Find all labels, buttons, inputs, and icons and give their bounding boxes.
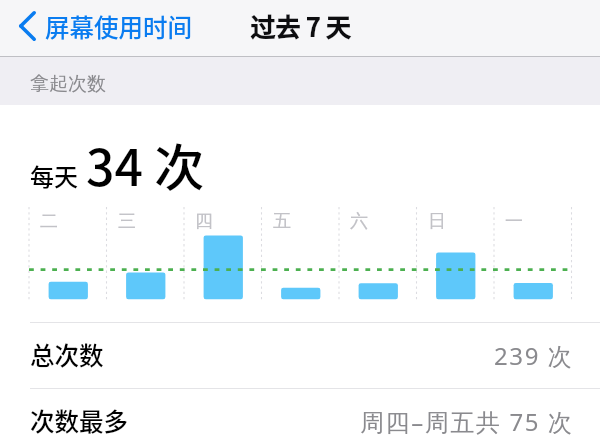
staticText: 每天: [30, 158, 78, 193]
staticText: 总次数: [30, 337, 104, 372]
staticText: 次数最多: [30, 403, 128, 438]
staticText: 三: [118, 210, 136, 233]
staticText: 34 次: [86, 128, 205, 200]
button[interactable]: 总次数: [0, 323, 600, 388]
staticText: 239 次: [494, 339, 574, 372]
button[interactable]: Back: [0, 11, 200, 46]
staticText: 五: [273, 210, 291, 233]
button[interactable]: 次数最多: [0, 389, 600, 445]
staticText: 六: [350, 210, 368, 233]
staticText: 日: [428, 210, 446, 233]
other: Back: [19, 11, 36, 41]
staticText: 周四–周五共 75 次: [360, 405, 574, 438]
staticText: 二: [40, 210, 58, 233]
staticText: 屏幕使用时间: [45, 9, 192, 44]
staticText: 过去 7 天: [250, 8, 351, 44]
staticText: 一: [505, 210, 523, 233]
staticText: 四: [195, 210, 213, 233]
staticText: 拿起次数: [30, 72, 106, 96]
